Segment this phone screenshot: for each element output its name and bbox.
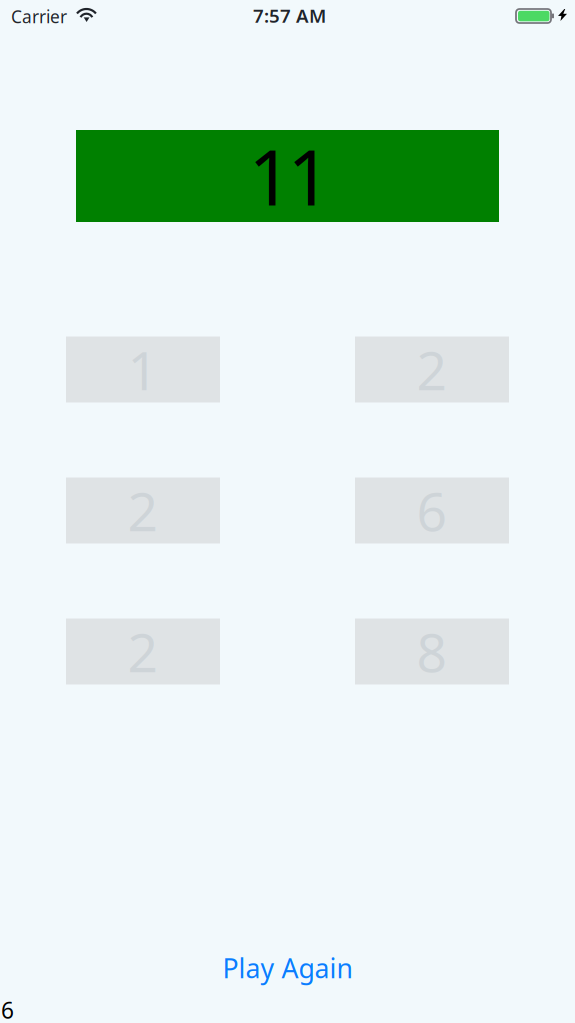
button[interactable]: 8 — [355, 618, 509, 684]
button[interactable]: Play Again — [0, 946, 575, 990]
button[interactable]: 6 — [355, 477, 509, 543]
staticText: 7:57 AM — [253, 3, 326, 28]
staticText: 1 — [127, 334, 158, 405]
staticText: Carrier — [11, 5, 67, 28]
staticText: 6 — [1, 995, 14, 1023]
staticText: 11 — [248, 125, 330, 226]
staticText: 2 — [127, 616, 158, 687]
button[interactable]: 2 — [66, 477, 220, 543]
staticText: Play Again — [222, 950, 352, 986]
staticText: 2 — [416, 334, 447, 405]
staticText: 2 — [127, 475, 158, 546]
button[interactable]: 2 — [66, 618, 220, 684]
staticText: 8 — [416, 616, 447, 687]
button[interactable]: 2 — [355, 336, 509, 402]
staticText: 6 — [416, 475, 447, 546]
